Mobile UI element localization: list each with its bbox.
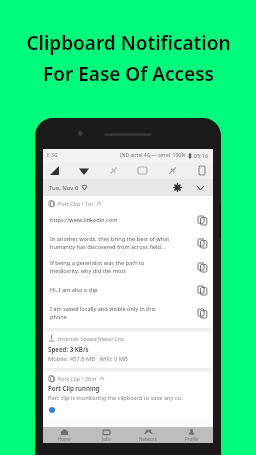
- button[interactable]: If being a generalist was the path to: [43, 255, 213, 279]
- staticText: Network: [139, 436, 158, 442]
- button[interactable]: In another words, they bring the best of…: [43, 231, 213, 255]
- staticText: Port Clip • 26m: [58, 375, 97, 382]
- staticText: Port Clip running: [48, 384, 100, 392]
- button[interactable]: Copy: [195, 306, 209, 320]
- button[interactable]: Copy: [195, 260, 209, 274]
- staticText: If being a generalist was the path to: [50, 259, 145, 267]
- button[interactable]: Auto rotate: [195, 164, 208, 177]
- staticText: Internet Speed Meter Lite: [58, 335, 125, 342]
- button[interactable]: Location: [166, 164, 179, 177]
- staticText: Hi, I am also a clip: [50, 286, 98, 294]
- staticText: Port clip is monitoring the clipboard to…: [48, 394, 184, 402]
- button[interactable]: Port Clip • 26m: [43, 371, 213, 417]
- button[interactable]: Network: [127, 427, 170, 443]
- staticText: Port Clip • 1m: [58, 200, 94, 207]
- button[interactable]: Wi-Fi: [77, 164, 90, 177]
- staticText: IND airtel 4G — airtel 100%: [120, 152, 186, 159]
- button[interactable]: Hi, I am also a clip: [43, 279, 213, 301]
- button[interactable]: Copy: [195, 283, 209, 297]
- staticText: Tue, Nov 6: [49, 184, 79, 192]
- staticText: 05:16: [194, 152, 209, 159]
- button[interactable]: Copy: [195, 236, 209, 250]
- staticText: phone: [50, 313, 67, 321]
- button[interactable]: Copy: [195, 213, 209, 227]
- button[interactable]: Battery saver: [136, 164, 149, 177]
- staticText: Speed: 3 KB/s: [48, 345, 89, 353]
- button[interactable]: https://www.linkedin.com: [43, 209, 213, 231]
- staticText: humanity has discovered from across fiel…: [50, 243, 166, 251]
- staticText: mediocrity, why did the most: [50, 267, 127, 275]
- button[interactable]: Expand: [194, 181, 207, 194]
- button[interactable]: Settings: [171, 181, 184, 194]
- button[interactable]: Internet Speed Meter Lite: [43, 331, 213, 368]
- button[interactable]: I am saved locally and visible only in t…: [43, 301, 213, 325]
- staticText: Profile: [185, 436, 199, 442]
- button[interactable]: Bluetooth: [107, 164, 120, 177]
- staticText: E 3G: [47, 152, 58, 159]
- staticText: Clipboard Notification: [26, 30, 231, 56]
- staticText: I am saved locally and visible only in t…: [50, 305, 156, 313]
- staticText: https://www.linkedin.com: [50, 216, 118, 224]
- staticText: For Ease Of Access: [43, 61, 214, 87]
- button[interactable]: Profile: [170, 427, 213, 443]
- staticText: In another words, they bring the best of…: [50, 235, 170, 243]
- button[interactable]: Home: [43, 427, 85, 443]
- button[interactable]: Jobs: [85, 427, 127, 443]
- staticText: Mobile: 457.6 MB WiFi: 0 MB: [48, 355, 128, 363]
- button[interactable]: Mobile data: [48, 164, 61, 177]
- staticText: Home: [58, 436, 71, 442]
- staticText: Jobs: [102, 436, 111, 442]
